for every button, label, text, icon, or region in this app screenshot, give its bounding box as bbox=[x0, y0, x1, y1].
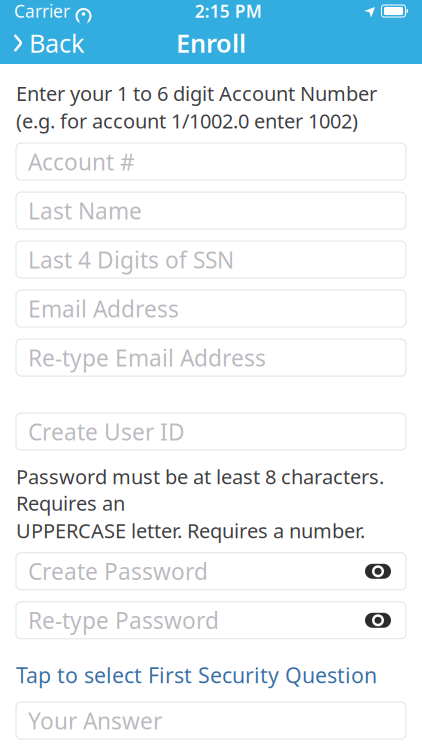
staticText: Your Answer bbox=[28, 706, 162, 736]
staticText: 2:15 PM bbox=[195, 0, 262, 22]
staticText: Create Password bbox=[28, 556, 208, 586]
staticText: Enter your 1 to 6 digit Account Number bbox=[16, 80, 377, 107]
staticText: Re-type Password bbox=[28, 605, 219, 635]
button[interactable]: Create Password bbox=[16, 553, 406, 590]
staticText: Email Address bbox=[28, 294, 179, 324]
staticText: Carrier bbox=[14, 0, 70, 22]
staticText: (e.g. for account 1/1002.0 enter 1002) bbox=[16, 108, 358, 134]
button[interactable]: Your Answer bbox=[16, 702, 406, 739]
staticText: Last Name bbox=[28, 196, 142, 226]
button[interactable]: Tap to select First Security Question bbox=[16, 661, 406, 689]
button[interactable]: Last 4 Digits of SSN bbox=[16, 241, 406, 278]
staticText: Re-type Email Address bbox=[28, 343, 266, 373]
button[interactable]: Account # bbox=[16, 143, 406, 180]
button[interactable]: Re-type Password bbox=[16, 602, 406, 639]
button[interactable]: Create User ID bbox=[16, 413, 406, 450]
staticText: UPPERCASE letter. Requires a number. bbox=[16, 517, 365, 544]
staticText: Enroll bbox=[176, 26, 246, 60]
button[interactable]: Re-type Email Address bbox=[16, 339, 406, 376]
button[interactable]: Email Address bbox=[16, 290, 406, 327]
staticText: Tap to select First Security Question bbox=[16, 661, 377, 689]
button[interactable]: Last Name bbox=[16, 192, 406, 229]
staticText: Last 4 Digits of SSN bbox=[28, 245, 234, 275]
button[interactable]: Back bbox=[0, 22, 97, 64]
staticText: Back bbox=[29, 26, 85, 60]
staticText: Account # bbox=[28, 147, 135, 177]
staticText: Password must be at least 8 characters. … bbox=[16, 463, 384, 516]
staticText: ➤ bbox=[364, 3, 376, 19]
staticText: Create User ID bbox=[28, 417, 185, 447]
